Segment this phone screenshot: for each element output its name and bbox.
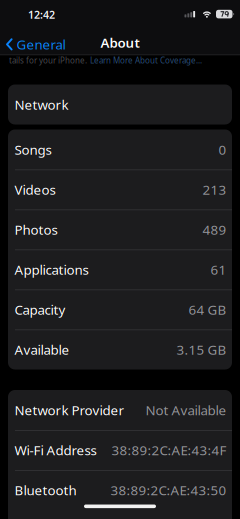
staticText: Wi-Fi Address xyxy=(14,441,96,459)
staticText: Not Available xyxy=(145,401,226,419)
staticText: 38:89:2C:AE:43:50 xyxy=(110,481,226,499)
staticText: 213 xyxy=(202,181,226,198)
staticText: Videos xyxy=(14,181,55,198)
staticText: 61 xyxy=(210,261,226,278)
staticText: Songs xyxy=(14,141,51,158)
staticText: General xyxy=(16,35,65,53)
staticText: Network Provider xyxy=(14,401,124,419)
staticText: Photos xyxy=(14,221,57,238)
staticText: 38:89:2C:AE:43:4F xyxy=(111,441,226,459)
staticText: 489 xyxy=(202,221,226,238)
staticText: tails for your iPhone. xyxy=(9,55,87,66)
button[interactable]: Learn More About Coverage... xyxy=(90,55,202,66)
staticText: 3.15 GB xyxy=(176,341,226,358)
staticText: 12:42 xyxy=(28,7,55,22)
staticText: About xyxy=(100,34,139,51)
staticText: Bluetooth xyxy=(14,481,76,499)
staticText: Learn More About Coverage... xyxy=(90,55,202,66)
staticText: Capacity xyxy=(14,301,65,318)
staticText: Applications xyxy=(14,261,88,278)
staticText: 64 GB xyxy=(188,301,226,318)
staticText: Network xyxy=(14,96,68,113)
staticText: Available xyxy=(14,341,69,358)
button[interactable]: Back xyxy=(6,35,65,53)
staticText: 0 xyxy=(218,141,226,158)
